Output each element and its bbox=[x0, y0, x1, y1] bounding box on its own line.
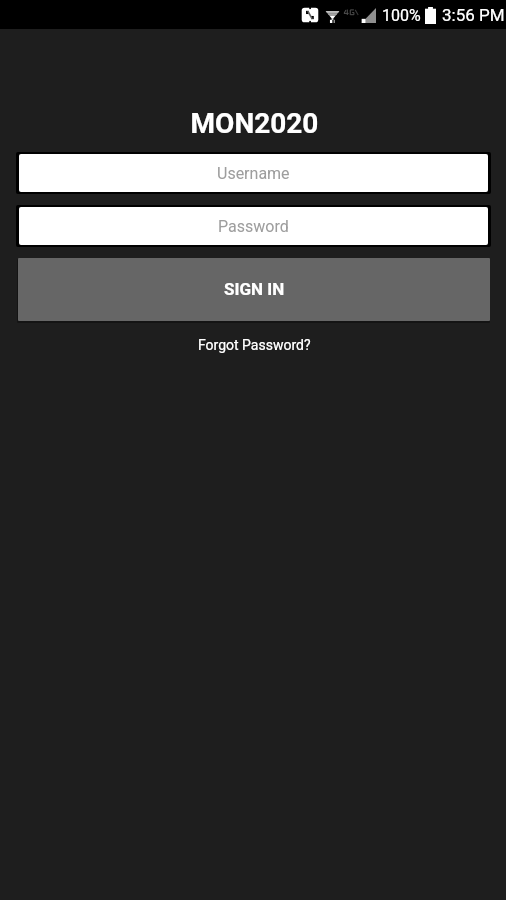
button[interactable]: SIGN IN bbox=[18, 258, 490, 321]
staticText: Forgot Password? bbox=[198, 337, 311, 353]
other: Wi-Fi bbox=[325, 7, 340, 23]
staticText: MON2020 bbox=[3, 107, 506, 140]
other: Mobile signal bbox=[343, 7, 376, 23]
staticText: 100% bbox=[382, 6, 421, 25]
other: NFC bbox=[301, 7, 319, 23]
button[interactable]: Forgot Password? bbox=[188, 333, 321, 357]
staticText: 3:56 PM bbox=[442, 5, 505, 25]
staticText: Username bbox=[217, 164, 290, 183]
other: Battery bbox=[425, 7, 436, 24]
staticText: SIGN IN bbox=[224, 279, 285, 299]
button[interactable]: Username bbox=[19, 154, 488, 192]
button[interactable]: Password bbox=[19, 207, 488, 245]
staticText: Password bbox=[218, 217, 289, 236]
